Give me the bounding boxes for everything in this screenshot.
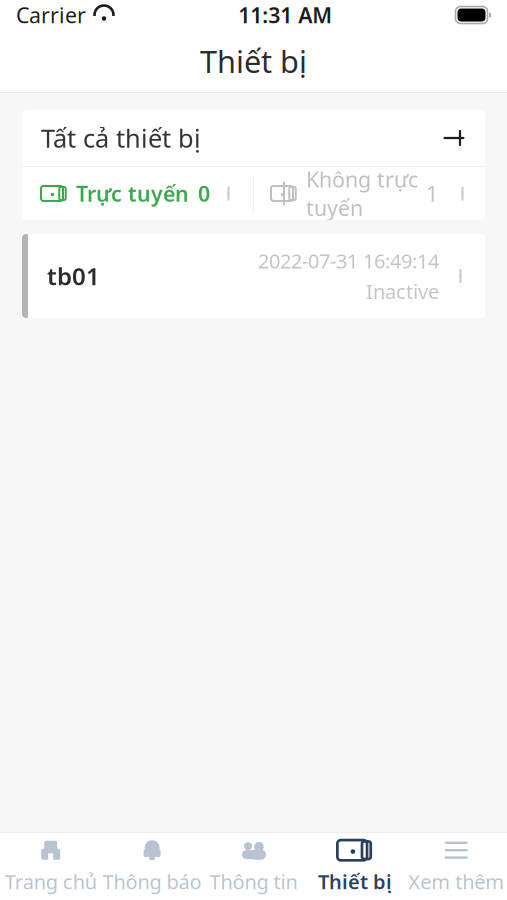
staticText: Không trực tuyến [306, 165, 418, 222]
button[interactable]: Trang chủ [0, 833, 101, 900]
button[interactable]: tb01 [22, 234, 485, 318]
staticText: Xem thêm [408, 868, 504, 895]
staticText: Trang chủ [5, 868, 97, 895]
staticText: 11:31 AM [238, 1, 332, 29]
button[interactable]: Thiết bị [304, 833, 406, 900]
staticText: Thiết bị [200, 41, 307, 81]
staticText: 1 [426, 179, 438, 208]
staticText: Tất cả thiết bị [41, 121, 201, 155]
button[interactable]: Tất cả thiết bị [22, 110, 485, 166]
button[interactable]: Thông tin [203, 833, 304, 900]
staticText: 2022-07-31 16:49:14 [258, 247, 439, 274]
button[interactable]: Trực tuyến [22, 167, 253, 220]
staticText: Carrier [16, 1, 86, 29]
staticText: Thông tin [209, 868, 297, 895]
staticText: Inactive [366, 278, 439, 305]
staticText: Thiết bị [318, 868, 392, 895]
button[interactable]: Xem thêm [406, 833, 507, 900]
button[interactable]: Thông báo [101, 833, 203, 900]
staticText: 0 [198, 179, 210, 208]
staticText: tb01 [47, 260, 100, 292]
staticText: Thông báo [103, 868, 202, 895]
button[interactable]: Không trực tuyến [254, 167, 485, 220]
staticText: Trực tuyến [76, 179, 189, 208]
